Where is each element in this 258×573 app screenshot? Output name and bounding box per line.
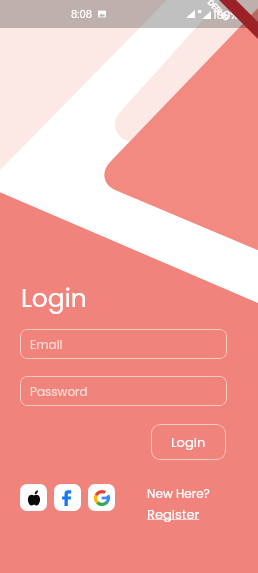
staticText: 100% [213, 7, 239, 22]
staticText: 8:08 [71, 7, 93, 21]
button[interactable]: Sign in with Facebook [54, 484, 81, 511]
staticText: Password [30, 383, 88, 400]
staticText: Login [171, 433, 206, 451]
button[interactable]: Login [151, 424, 226, 460]
staticText: Register [147, 505, 200, 523]
staticText: Login [21, 281, 87, 316]
button[interactable]: Sign in with Apple [20, 484, 47, 511]
button[interactable]: Email [20, 329, 227, 359]
button[interactable]: Register [147, 505, 200, 523]
staticText: Email [30, 336, 63, 353]
button[interactable]: Password [20, 376, 227, 406]
staticText: New Here? [147, 485, 210, 502]
button[interactable]: Sign in with Google [88, 484, 115, 511]
staticText: DEBUG [205, 0, 232, 24]
